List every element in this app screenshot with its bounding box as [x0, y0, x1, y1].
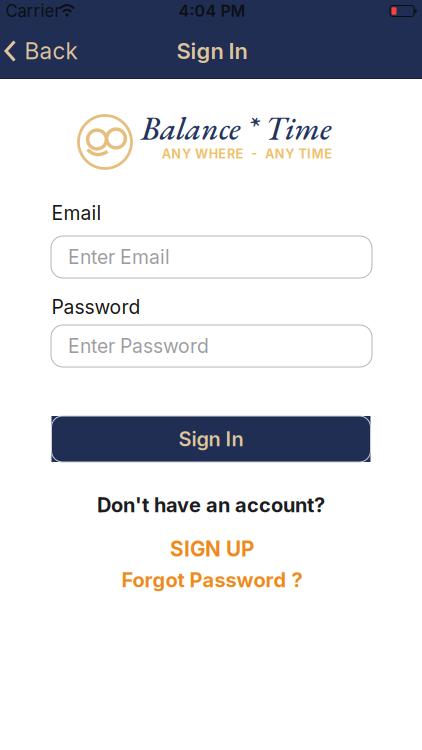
staticText: Sign In: [178, 427, 243, 451]
staticText: Enter Email: [68, 245, 170, 269]
button[interactable]: Enter Email: [51, 236, 372, 278]
staticText: Back: [24, 37, 77, 65]
staticText: Password: [51, 295, 140, 319]
staticText: Balance * Time: [141, 108, 331, 149]
staticText: Sign In: [176, 38, 247, 64]
button[interactable]: Forgot Password ?: [121, 568, 302, 592]
button[interactable]: Sign In: [51, 416, 370, 462]
staticText: Don't have an account?: [97, 493, 325, 517]
button[interactable]: Back: [4, 37, 77, 65]
staticText: SIGN UP: [170, 536, 254, 561]
staticText: 4:04 PM: [178, 1, 245, 21]
staticText: Carrier: [5, 1, 60, 21]
staticText: ANY WHERE - ANY TIME: [162, 146, 332, 162]
button[interactable]: SIGN UP: [170, 536, 254, 561]
button[interactable]: Enter Password: [51, 325, 372, 367]
staticText: Enter Password: [68, 334, 209, 358]
staticText: Email: [51, 201, 101, 225]
staticText: Forgot Password ?: [121, 568, 302, 592]
